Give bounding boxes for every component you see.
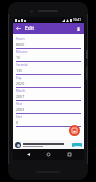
staticText: Hours: [16, 37, 25, 41]
staticText: Edit: [25, 25, 35, 32]
staticText: OPEN: [74, 144, 81, 147]
button[interactable]: Save: [69, 125, 80, 136]
staticText: 2020: [16, 81, 25, 86]
staticText: Minutes: [16, 50, 28, 54]
button[interactable]: Back: [13, 23, 24, 34]
staticText: Seconds: [16, 63, 28, 67]
staticText: 10:41: [73, 18, 82, 22]
staticText: 135: [16, 68, 23, 73]
staticText: 2007: [16, 94, 25, 99]
staticText: Sort: [16, 115, 22, 119]
button[interactable]: Sort: [16, 114, 81, 127]
staticText: Month: [16, 89, 26, 93]
button[interactable]: Delete: [73, 23, 84, 34]
staticText: 2003: [16, 107, 25, 112]
staticText: Year: [16, 102, 23, 106]
staticText: 0: [16, 120, 19, 125]
button[interactable]: Seconds: [16, 62, 81, 75]
button[interactable]: Recent apps: [64, 149, 75, 160]
button[interactable]: OPEN: [72, 143, 82, 147]
button[interactable]: Month: [16, 88, 81, 101]
button[interactable]: Back: [23, 149, 34, 160]
staticText: 15: [16, 55, 21, 60]
button[interactable]: Day: [16, 75, 81, 88]
button[interactable]: Hours: [16, 36, 81, 49]
button[interactable]: Home: [43, 149, 54, 160]
staticText: 8000: [16, 42, 25, 47]
button[interactable]: Year: [16, 101, 81, 114]
button[interactable]: Minutes: [16, 49, 81, 62]
staticText: Day: [16, 76, 22, 80]
button[interactable]: OPEN: [13, 140, 84, 149]
